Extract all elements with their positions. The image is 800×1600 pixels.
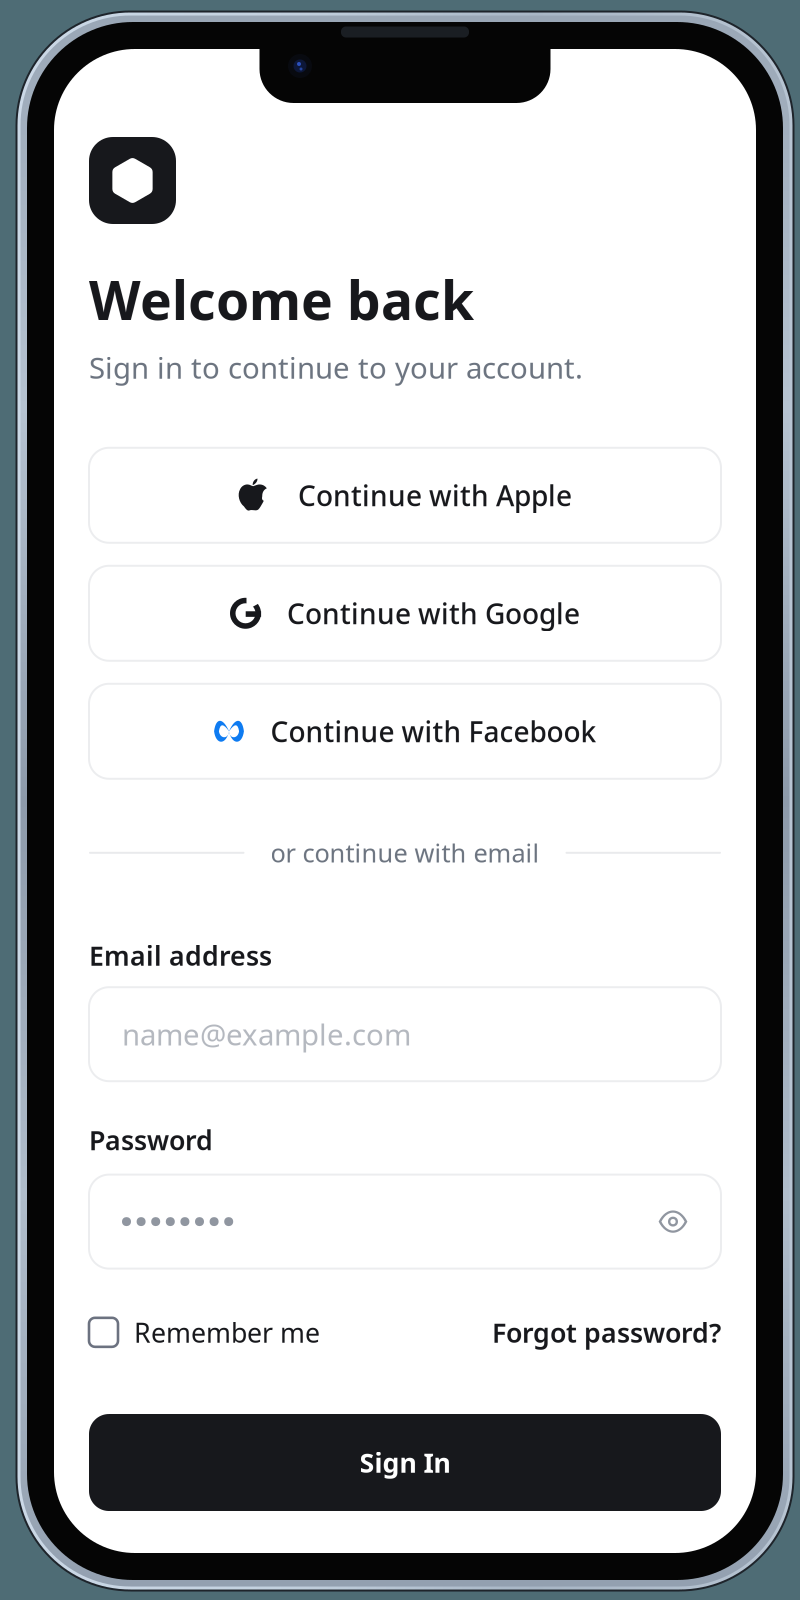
staticText: Remember me bbox=[134, 1315, 320, 1350]
button[interactable]: Sign In bbox=[89, 1414, 721, 1511]
staticText: Continue with Apple bbox=[298, 477, 572, 514]
staticText: Email address bbox=[89, 938, 272, 973]
staticText: Welcome back bbox=[89, 264, 474, 335]
staticText: Continue with Facebook bbox=[270, 713, 596, 750]
staticText: Sign In bbox=[359, 1445, 450, 1480]
staticText: Sign in to continue to your account. bbox=[89, 348, 583, 387]
button[interactable]: Continue with Apple bbox=[89, 448, 721, 543]
staticText: Forgot password? bbox=[492, 1315, 721, 1350]
button[interactable]: Forgot password? bbox=[492, 1315, 721, 1350]
staticText: Continue with Google bbox=[287, 595, 580, 632]
button[interactable]: Continue with Facebook bbox=[89, 684, 721, 779]
button[interactable]: Remember me bbox=[89, 1315, 320, 1350]
staticText: or continue with email bbox=[270, 836, 539, 870]
button[interactable]: Continue with Google bbox=[89, 566, 721, 661]
staticText: name@example.com bbox=[122, 1015, 411, 1054]
button[interactable]: Show password bbox=[658, 1211, 688, 1232]
staticText: Password bbox=[89, 1122, 213, 1158]
